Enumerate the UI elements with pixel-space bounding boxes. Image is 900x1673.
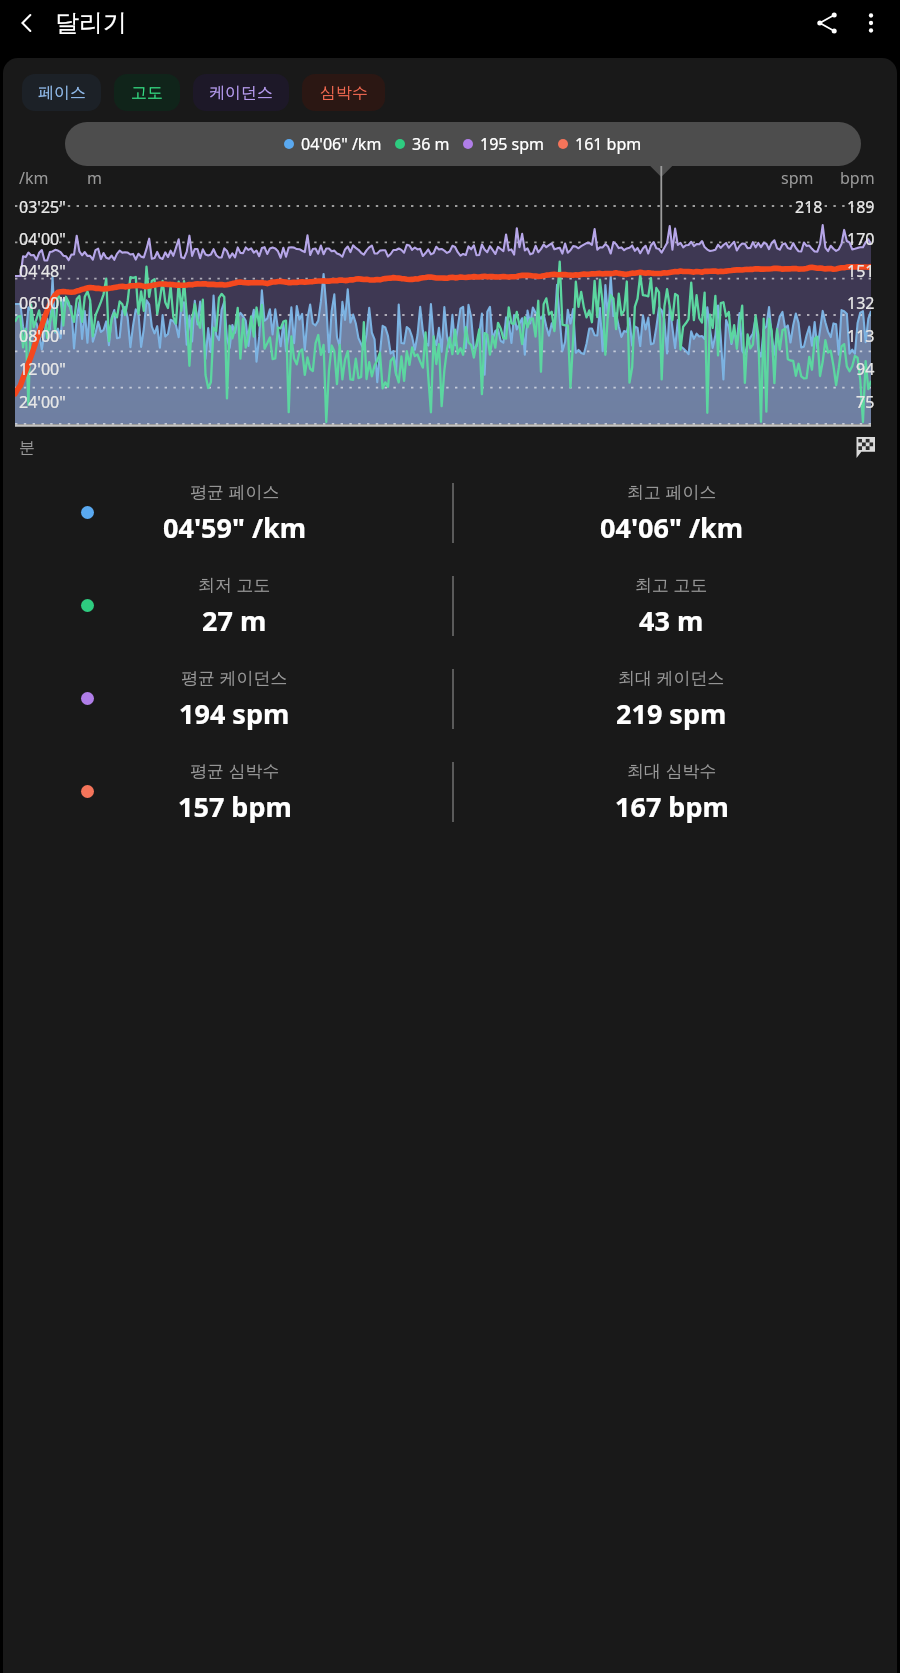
button[interactable]: 평균 케이던스 (3, 652, 897, 745)
staticText: bpm (840, 167, 875, 189)
staticText: 04'06" /km (600, 509, 744, 546)
staticText: 195 spm (480, 133, 545, 155)
staticText: 고도 (131, 83, 163, 103)
staticText: 03'25" (19, 196, 66, 218)
staticText: 132 (847, 292, 875, 314)
staticText: 최대 심박수 (627, 759, 717, 782)
staticText: m (87, 167, 102, 189)
staticText: 04'48" (19, 260, 66, 282)
button[interactable]: 고도 (114, 74, 180, 111)
staticText: 최저 고도 (198, 573, 271, 596)
button[interactable]: 심박수 (302, 74, 385, 111)
staticText: 06'00" (19, 292, 66, 314)
staticText: 04'00" (19, 228, 66, 250)
staticText: 167 bpm (615, 788, 729, 825)
staticText: 12'00" (19, 358, 66, 380)
staticText: 최고 고도 (635, 573, 708, 596)
button[interactable]: 페이스 (22, 74, 101, 111)
staticText: 36 m (412, 133, 450, 155)
button[interactable]: 최저 고도 (3, 559, 897, 652)
button[interactable]: 04'06" /km (65, 122, 861, 166)
staticText: spm (781, 167, 814, 189)
button[interactable]: Back (6, 2, 48, 44)
staticText: 157 bpm (178, 788, 292, 825)
staticText: 평균 케이던스 (181, 666, 288, 689)
staticText: 161 bpm (575, 133, 642, 155)
staticText: 최고 페이스 (627, 480, 717, 503)
staticText: 43 m (639, 602, 704, 639)
staticText: 170 (847, 228, 875, 250)
staticText: 평균 심박수 (190, 759, 280, 782)
staticText: 151 (847, 260, 875, 282)
staticText: 04'59" /km (163, 509, 307, 546)
staticText: 24'00" (19, 391, 66, 413)
staticText: 94 (856, 358, 875, 380)
staticText: 평균 페이스 (190, 480, 280, 503)
button[interactable]: Share (805, 1, 849, 45)
staticText: 페이스 (38, 83, 86, 103)
staticText: 27 m (202, 602, 267, 639)
staticText: /km (19, 167, 49, 189)
staticText: 194 spm (179, 695, 290, 732)
staticText: 심박수 (320, 83, 368, 103)
staticText: 04'06" /km (301, 133, 382, 155)
other: Finish (854, 437, 875, 458)
staticText: 189 (847, 196, 875, 218)
staticText: 75 (856, 391, 875, 413)
staticText: 219 spm (616, 695, 727, 732)
staticText: 케이던스 (209, 83, 273, 103)
staticText: 113 (847, 325, 875, 347)
button[interactable]: 평균 심박수 (3, 745, 897, 838)
button[interactable]: More options (849, 1, 893, 45)
staticText: 달리기 (55, 8, 127, 38)
staticText: 08'00" (19, 325, 66, 347)
button[interactable]: 케이던스 (193, 74, 289, 111)
button[interactable]: 평균 페이스 (3, 466, 897, 559)
staticText: 분 (19, 438, 35, 458)
staticText: 최대 케이던스 (618, 666, 725, 689)
staticText: 218 (795, 196, 823, 218)
